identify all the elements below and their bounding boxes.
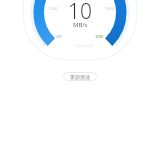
- staticText: 10M: [95, 34, 104, 39]
- staticText: 1024: [105, 6, 115, 11]
- staticText: MB/s: [73, 21, 88, 29]
- staticText: 10: [68, 0, 92, 26]
- staticText: 重新测速: [70, 74, 90, 80]
- staticText: 0M: [56, 34, 62, 39]
- staticText: 1024: [48, 6, 58, 11]
- staticText: 网速测试完成: [74, 44, 94, 48]
- button[interactable]: 重新测速: [63, 72, 97, 81]
